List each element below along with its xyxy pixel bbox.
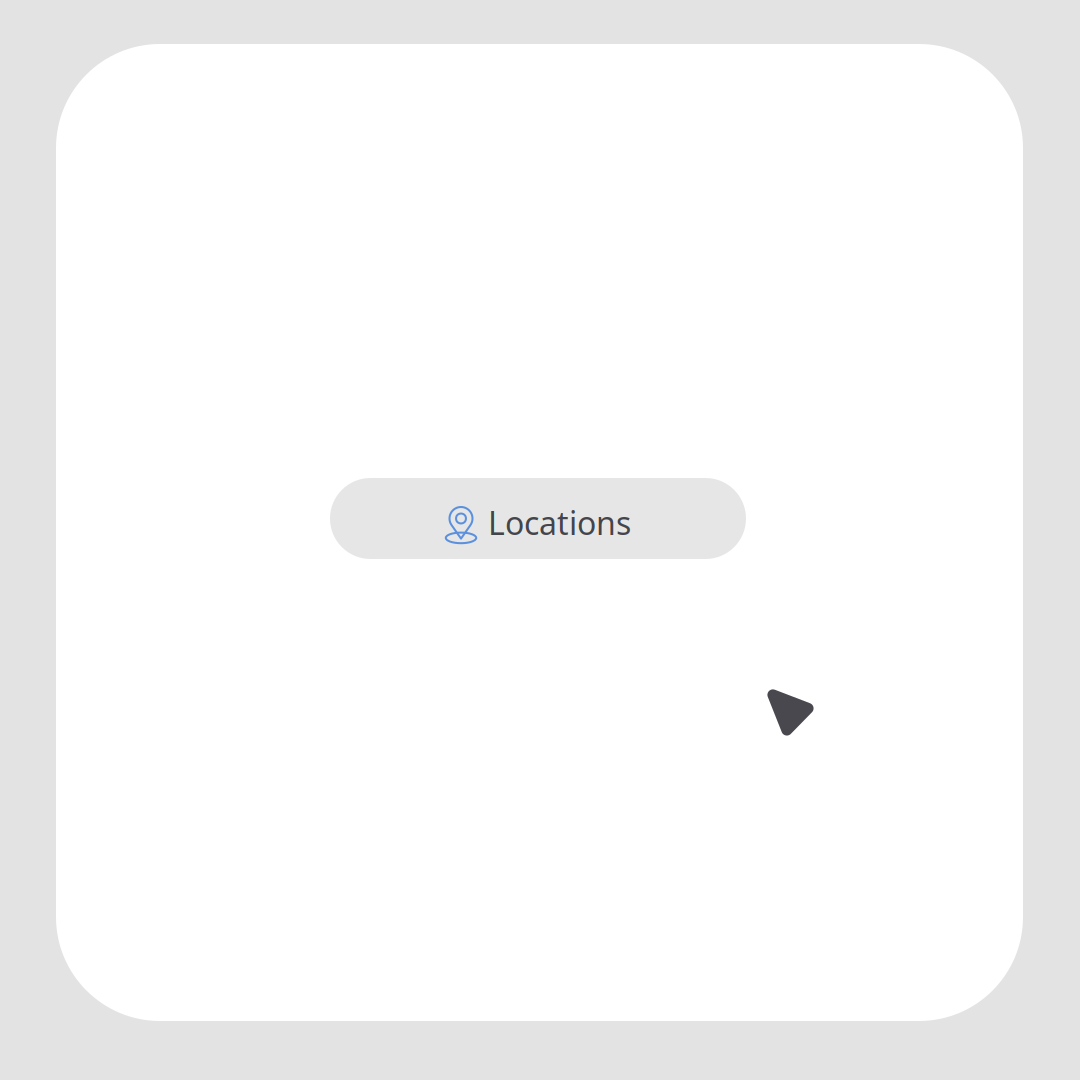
staticText: Locations <box>488 501 631 544</box>
button[interactable]: Locations <box>330 478 746 559</box>
